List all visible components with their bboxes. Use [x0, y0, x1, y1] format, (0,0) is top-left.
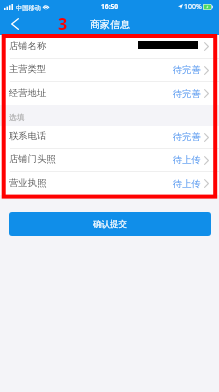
staticText: 营业执照 — [9, 177, 47, 189]
staticText: 待上传 — [173, 178, 201, 190]
button[interactable]: 店铺名称 — [0, 35, 219, 59]
button[interactable]: 主营类型 — [0, 59, 219, 82]
staticText: 联系电话 — [9, 130, 47, 142]
staticText: 100% — [184, 2, 202, 12]
staticText: 中国移动 — [16, 4, 41, 12]
button[interactable]: 店铺门头照 — [0, 149, 219, 172]
staticText: 商家信息 — [90, 18, 130, 31]
staticText: 待完善 — [173, 88, 201, 100]
staticText: 经营地址 — [9, 87, 47, 99]
staticText: 3 — [58, 13, 68, 35]
staticText: 16:50 — [101, 2, 119, 11]
staticText: 店铺名称 — [9, 40, 47, 52]
button[interactable]: 联系电话 — [0, 126, 219, 149]
button[interactable]: 确认提交 — [9, 212, 211, 236]
button[interactable]: 经营地址 — [0, 82, 219, 105]
staticText: 确认提交 — [93, 219, 127, 230]
staticText: 待上传 — [173, 154, 201, 166]
button[interactable]: 营业执照 — [0, 172, 219, 195]
button[interactable]: Back — [0, 13, 26, 35]
staticText: 待完善 — [173, 64, 201, 76]
staticText: 选填 — [9, 112, 25, 122]
staticText: 主营类型 — [9, 63, 47, 75]
staticText: 店铺门头照 — [9, 153, 56, 165]
staticText: 待完善 — [173, 131, 201, 143]
